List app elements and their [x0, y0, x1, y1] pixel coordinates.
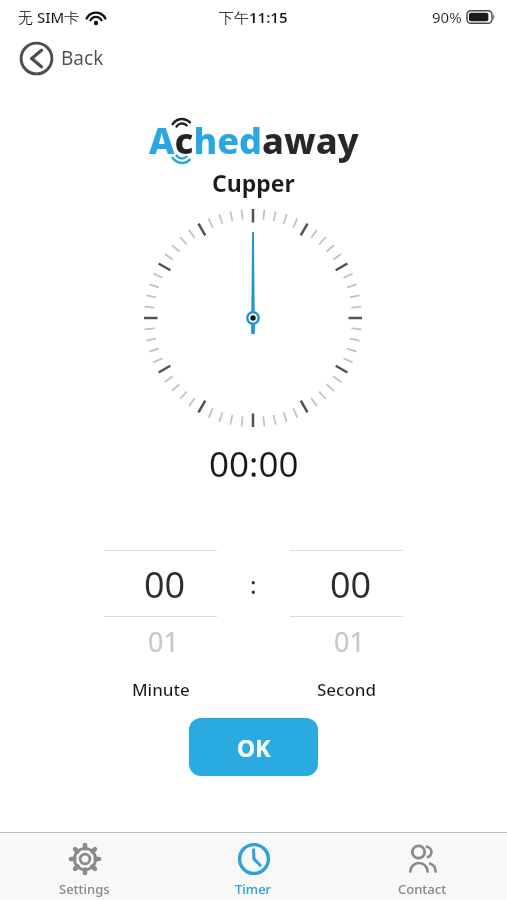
- staticText: :: [250, 568, 257, 601]
- staticText: Second: [317, 678, 377, 701]
- button[interactable]: Back: [20, 40, 104, 76]
- staticText: OK: [237, 732, 271, 763]
- staticText: Timer: [235, 880, 272, 898]
- staticText: Contact: [398, 880, 447, 898]
- button[interactable]: OK: [189, 718, 318, 776]
- button[interactable]: Contact: [338, 833, 507, 900]
- staticText: 00: [144, 560, 186, 609]
- staticText: Achedaway: [149, 116, 359, 165]
- staticText: Minute: [132, 678, 190, 701]
- staticText: 00: [330, 560, 372, 609]
- button[interactable]: Timer: [169, 833, 338, 900]
- staticText: Settings: [59, 880, 110, 898]
- staticText: 下午11:15: [219, 7, 288, 27]
- staticText: 00:00: [209, 440, 299, 485]
- staticText: Back: [61, 45, 104, 71]
- staticText: 01: [334, 623, 365, 660]
- staticText: 90%: [432, 7, 462, 27]
- staticText: 01: [148, 623, 179, 660]
- staticText: Cupper: [212, 167, 295, 198]
- staticText: 无 SIM卡: [18, 7, 80, 27]
- button[interactable]: Settings: [0, 833, 169, 900]
